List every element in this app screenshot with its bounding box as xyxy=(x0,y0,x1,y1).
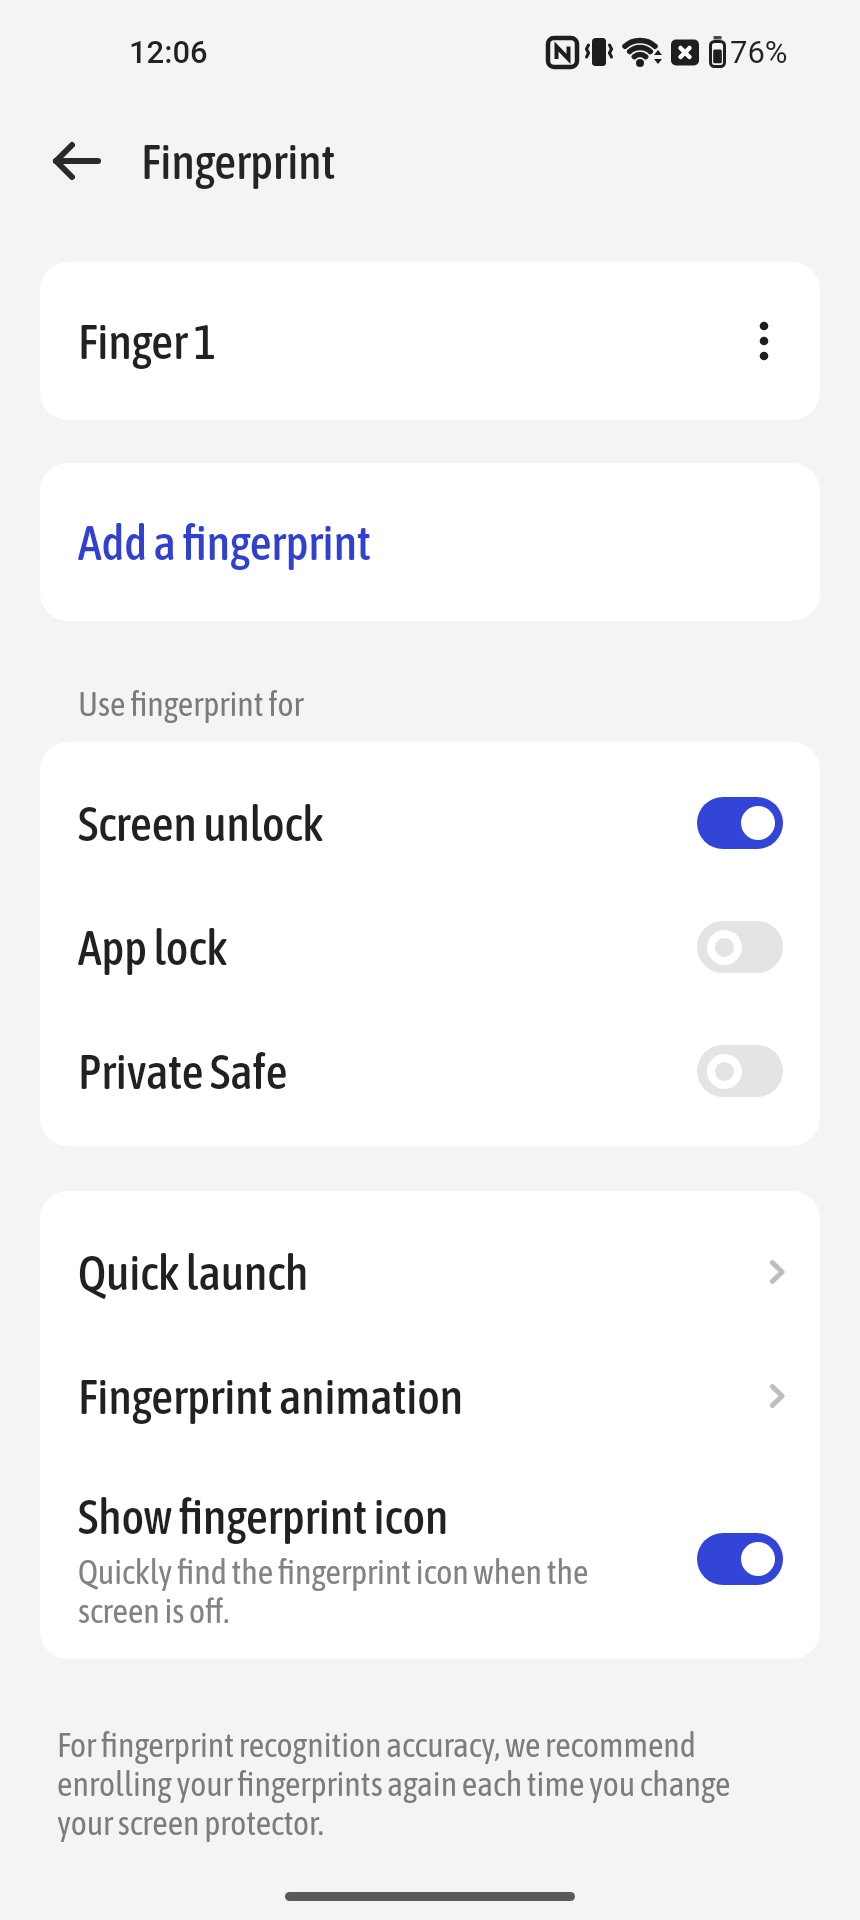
staticText: App lock xyxy=(78,920,228,975)
staticText: Private Safe xyxy=(78,1044,288,1099)
staticText: For fingerprint recognition accuracy, we… xyxy=(57,1725,731,1842)
button[interactable]: Add a fingerprint xyxy=(40,463,820,621)
button[interactable]: Private Safe xyxy=(40,1009,820,1133)
staticText: Screen unlock xyxy=(78,796,324,851)
button[interactable]: Show fingerprint icon xyxy=(40,1459,820,1659)
staticText: Quick launch xyxy=(78,1245,309,1300)
staticText: 12:06 xyxy=(129,34,208,70)
button[interactable] xyxy=(697,1533,783,1585)
staticText: 76% xyxy=(730,34,788,70)
staticText: Fingerprint xyxy=(141,134,336,189)
button[interactable] xyxy=(697,1045,783,1097)
button[interactable]: Screen unlock xyxy=(40,761,820,885)
button[interactable]: Finger 1 xyxy=(40,262,820,420)
staticText: Use fingerprint for xyxy=(78,684,304,723)
staticText: Fingerprint animation xyxy=(78,1369,464,1424)
button[interactable]: Fingerprint animation xyxy=(40,1333,820,1459)
button[interactable]: Quick launch xyxy=(40,1211,820,1333)
staticText: Add a fingerprint xyxy=(78,515,371,570)
button[interactable] xyxy=(697,797,783,849)
staticText: Quickly find the fingerprint icon when t… xyxy=(78,1552,589,1630)
button[interactable]: App lock xyxy=(40,885,820,1009)
staticText: Finger 1 xyxy=(78,314,217,369)
button[interactable] xyxy=(55,140,99,182)
staticText: Show fingerprint icon xyxy=(78,1489,449,1544)
button[interactable] xyxy=(697,921,783,973)
